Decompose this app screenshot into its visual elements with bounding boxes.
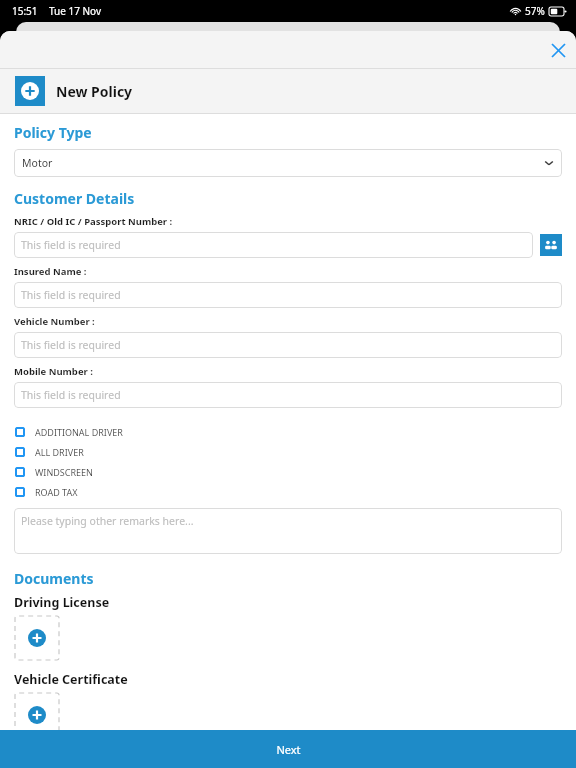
staticText: Documents: [14, 569, 94, 588]
staticText: This field is required: [21, 288, 121, 302]
button[interactable]: ROAD TAX: [0, 482, 576, 502]
staticText: Mobile Number :: [14, 365, 93, 378]
staticText: Driving License: [14, 594, 110, 611]
button[interactable]: Next: [0, 730, 576, 768]
button[interactable]: Add document: [15, 693, 59, 737]
button[interactable]: WINDSCREEN: [0, 462, 576, 482]
button[interactable]: Add document: [15, 616, 59, 660]
staticText: Vehicle Certificate: [14, 671, 128, 688]
staticText: This field is required: [21, 388, 121, 402]
staticText: This field is required: [21, 338, 121, 352]
button[interactable]: ADDITIONAL DRIVER: [0, 422, 576, 442]
staticText: Please typing other remarks here...: [21, 514, 194, 528]
button[interactable]: Select contact: [540, 234, 562, 256]
staticText: New Policy: [56, 82, 133, 101]
button[interactable]: Motor: [14, 149, 562, 177]
staticText: Insured Name :: [14, 265, 87, 278]
staticText: Vehicle Number :: [14, 315, 95, 328]
button[interactable]: New Policy: [0, 69, 576, 113]
staticText: ROAD TAX: [35, 486, 78, 498]
button[interactable]: Please typing other remarks here...: [14, 508, 562, 554]
staticText: WINDSCREEN: [35, 466, 93, 478]
button[interactable]: Close: [544, 36, 572, 64]
staticText: 57%: [525, 4, 545, 18]
staticText: NRIC / Old IC / Passport Number :: [14, 215, 173, 228]
button[interactable]: This field is required: [14, 282, 562, 308]
staticText: Motor: [22, 156, 53, 170]
staticText: ALL DRIVER: [35, 446, 84, 458]
button[interactable]: This field is required: [14, 332, 562, 358]
staticText: ADDITIONAL DRIVER: [35, 426, 123, 438]
button[interactable]: This field is required: [14, 232, 533, 258]
staticText: Policy Type: [14, 123, 92, 142]
staticText: Customer Details: [14, 189, 135, 208]
staticText: 15:51: [12, 4, 38, 18]
staticText: This field is required: [21, 238, 121, 252]
staticText: Next: [276, 742, 301, 757]
button[interactable]: This field is required: [14, 382, 562, 408]
staticText: Tue 17 Nov: [49, 4, 102, 18]
button[interactable]: ALL DRIVER: [0, 442, 576, 462]
